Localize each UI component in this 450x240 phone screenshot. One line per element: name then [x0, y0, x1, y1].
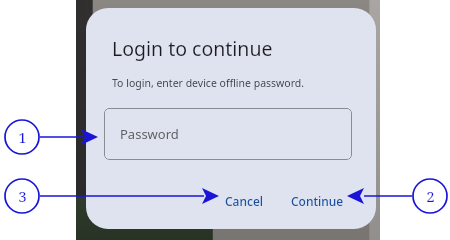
staticText: 3 [18, 186, 27, 206]
button[interactable]: Cancel [216, 186, 273, 216]
button[interactable]: Continue [282, 186, 353, 216]
staticText: To login, enter device offline password. [112, 76, 305, 90]
staticText: Login to continue [112, 35, 273, 62]
staticText: Cancel [225, 193, 264, 209]
staticText: 2 [426, 186, 435, 206]
staticText: Password [120, 125, 179, 143]
staticText: Continue [291, 193, 344, 209]
staticText: 1 [18, 127, 27, 147]
button[interactable]: Password [104, 108, 352, 160]
